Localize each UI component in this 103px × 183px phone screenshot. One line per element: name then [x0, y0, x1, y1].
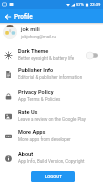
staticText: jok mili — [21, 26, 40, 33]
staticText: Rate Us — [18, 109, 38, 116]
staticText: LOGOUT — [45, 174, 62, 179]
button[interactable]: Dark Theme — [0, 46, 103, 65]
staticText: More Apps — [18, 129, 46, 136]
staticText: Publisher Info — [18, 67, 54, 74]
staticText: App Terms & Policies — [18, 97, 61, 102]
button[interactable]: More Apps — [0, 127, 103, 146]
staticText: Editorial & publisher information — [18, 75, 83, 80]
staticText: App Info, Build Version, Copyright — [18, 159, 85, 164]
staticText: 57% — [76, 2, 84, 7]
button[interactable]: Rate Us — [0, 107, 103, 126]
button[interactable]: Publisher Info — [0, 65, 103, 84]
staticText: Dark Theme — [18, 48, 49, 55]
staticText: jokjohong@mail.ru — [21, 34, 56, 39]
staticText: Better eyesight & battery life — [18, 56, 75, 61]
button[interactable]: Dark theme toggle — [86, 51, 98, 60]
staticText: About — [18, 151, 34, 158]
staticText: Leave a review on the Google Play — [18, 117, 86, 122]
button[interactable]: Privacy Policy — [0, 87, 103, 106]
button[interactable]: LOGOUT — [31, 171, 75, 182]
staticText: 23:39 — [90, 2, 101, 7]
button[interactable]: About — [0, 149, 103, 168]
staticText: Privacy Policy — [18, 89, 54, 96]
staticText: More apps from developer — [18, 137, 71, 142]
button[interactable]: jok mili — [0, 25, 103, 39]
staticText: Profile — [14, 13, 33, 21]
button[interactable]: Back — [2, 11, 13, 22]
